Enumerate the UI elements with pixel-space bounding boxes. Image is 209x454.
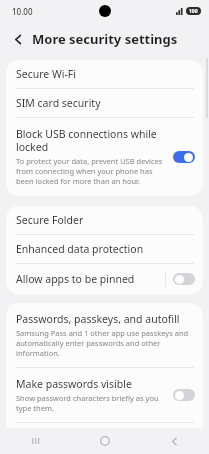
button[interactable]: Passwords, passkeys, and autofill bbox=[6, 303, 203, 367]
button[interactable]: Allow apps to be pinned bbox=[6, 264, 203, 294]
staticText: SIM card security bbox=[16, 96, 101, 110]
button[interactable]: Secure Folder bbox=[6, 206, 203, 234]
staticText: Allow apps to be pinned bbox=[16, 272, 165, 286]
button[interactable]: Back bbox=[7, 28, 29, 50]
button[interactable]: SIM card security bbox=[6, 89, 203, 117]
staticText: Secure Wi-Fi bbox=[16, 67, 77, 81]
staticText: Samsung Pass and 1 other app use passkey… bbox=[16, 328, 193, 358]
staticText: More security settings bbox=[32, 30, 178, 48]
button[interactable]: Back bbox=[154, 428, 194, 454]
button[interactable]: Make passwords visible bbox=[6, 368, 203, 422]
button[interactable]: Enhanced data protection bbox=[6, 235, 203, 263]
staticText: Block USB connections while locked bbox=[16, 127, 167, 154]
staticText: Secure Folder bbox=[16, 213, 84, 227]
staticText: Enhanced data protection bbox=[16, 242, 144, 256]
button[interactable]: Home bbox=[85, 428, 125, 454]
button[interactable]: Secure Wi-Fi bbox=[6, 60, 203, 88]
staticText: To protect your data, prevent USB device… bbox=[16, 156, 167, 186]
staticText: Make passwords visible bbox=[16, 377, 132, 391]
staticText: 10.00 bbox=[12, 6, 33, 17]
staticText: Show password characters briefly as you … bbox=[16, 393, 167, 413]
button[interactable]: Block USB connections while locked bbox=[6, 118, 203, 196]
staticText: Passwords, passkeys, and autofill bbox=[16, 312, 180, 326]
staticText: 100 bbox=[189, 8, 198, 15]
button[interactable]: Recent apps bbox=[15, 428, 55, 454]
